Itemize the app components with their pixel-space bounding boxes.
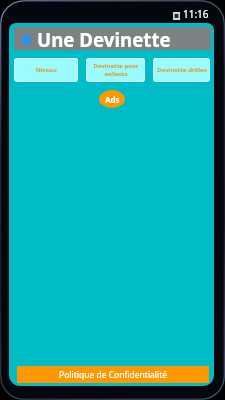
staticText: Niveau <box>35 66 57 74</box>
staticText: 11:16 <box>183 7 209 21</box>
staticText: Devinette drôles <box>157 66 207 74</box>
button[interactable]: Devinette pour enfants <box>87 59 144 81</box>
button[interactable]: Devinette drôles <box>154 59 209 81</box>
staticText: Une Devinette <box>37 27 171 50</box>
staticText: Devinette pour enfants <box>93 62 139 78</box>
button[interactable]: Niveau <box>15 59 77 81</box>
staticText: Ads <box>105 94 120 105</box>
button[interactable]: Politique de Confidentialité <box>17 366 209 383</box>
staticText: Politique de Confidentialité <box>59 369 168 381</box>
button[interactable]: App icon <box>14 27 211 50</box>
button[interactable]: Ads <box>99 90 125 108</box>
